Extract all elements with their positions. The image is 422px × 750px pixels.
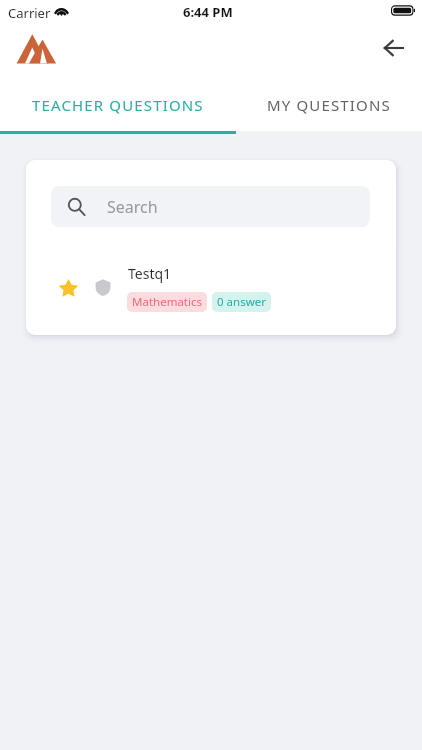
staticText: Mathematics (132, 294, 202, 310)
staticText: Carrier (8, 4, 51, 22)
button[interactable]: Back (371, 26, 415, 70)
button[interactable]: Search (51, 186, 370, 227)
staticText: 0 answer (217, 294, 266, 310)
button[interactable]: MY QUESTIONS (236, 84, 422, 125)
staticText: 6:44 PM (183, 3, 233, 21)
staticText: Search (107, 196, 158, 218)
staticText: MY QUESTIONS (267, 95, 391, 115)
staticText: Testq1 (128, 264, 172, 283)
button[interactable]: Testq1 (26, 256, 396, 318)
button[interactable]: TEACHER QUESTIONS (0, 84, 236, 125)
button[interactable]: Home (10, 29, 62, 69)
staticText: TEACHER QUESTIONS (32, 95, 204, 115)
